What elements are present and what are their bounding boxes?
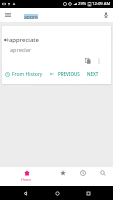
button[interactable]: Menu: [0, 8, 16, 22]
button[interactable]: History: [73, 167, 93, 186]
button[interactable]: Back: [18, 186, 32, 200]
staticText: apreciar: [10, 46, 32, 53]
staticText: Home: [21, 177, 32, 182]
staticText: PREVIOUS: [58, 71, 80, 77]
button[interactable]: More options: [93, 55, 104, 66]
button[interactable]: From History: [4, 70, 44, 79]
button[interactable]: Recents: [81, 186, 95, 200]
staticText: From History: [12, 71, 43, 78]
button[interactable]: Search: [93, 167, 113, 186]
staticText: 29%: [78, 1, 87, 7]
button[interactable]: NEXT: [86, 70, 100, 78]
button[interactable]: Copy: [82, 55, 93, 66]
button[interactable]: PREVIOUS: [57, 70, 81, 78]
staticText: appreciate: [9, 36, 39, 43]
staticText: 12:09 AM: [92, 1, 111, 7]
staticText: NEXT: [87, 71, 99, 77]
button[interactable]: Home: [50, 186, 64, 200]
button[interactable]: Voice search: [99, 8, 113, 22]
staticText: appre: [24, 14, 38, 19]
button[interactable]: Home: [0, 167, 53, 186]
button[interactable]: Favorites: [53, 167, 73, 186]
